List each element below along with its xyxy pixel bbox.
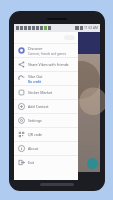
staticText: Add Contact (28, 104, 49, 109)
staticText: No credit (28, 80, 42, 84)
button[interactable]: About (14, 142, 78, 155)
staticText: 11:53 AM (84, 26, 99, 30)
staticText: Share Vibes with friends (28, 62, 69, 67)
button[interactable]: QR code (14, 128, 78, 141)
staticText: Connect, friends and games (28, 52, 67, 56)
staticText: Discover (28, 46, 43, 51)
button[interactable]: Share Vibes with friends (14, 58, 78, 71)
staticText: Exit (28, 160, 35, 165)
button[interactable]: Exit (14, 156, 78, 169)
button[interactable]: Sticker Market (14, 86, 78, 99)
staticText: Sticker Market (28, 90, 53, 95)
button[interactable]: Compose (87, 158, 98, 169)
button[interactable]: Vibe Out (14, 72, 78, 85)
button[interactable]: Discover (14, 44, 78, 57)
staticText: Settings (28, 118, 42, 123)
staticText: About (28, 146, 39, 151)
button[interactable]: Settings (14, 114, 78, 127)
button[interactable]: Add Contact (14, 100, 78, 113)
staticText: QR code (28, 132, 43, 137)
staticText: Vibe Out (28, 74, 43, 79)
